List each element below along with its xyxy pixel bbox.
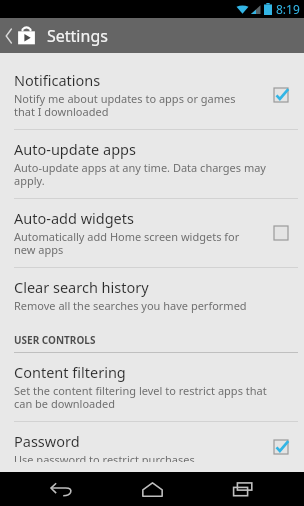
button[interactable]: Notifications [0,61,304,129]
button[interactable]: Home [122,472,182,506]
staticText: Remove all the searches you have perform… [14,298,247,313]
button[interactable]: Navigate up [0,18,41,53]
button[interactable]: Clear search history [0,268,304,323]
button[interactable]: Notifications [268,82,294,108]
staticText: Use password to restrict purchases [14,452,195,462]
button[interactable]: Auto-add widgets [268,220,294,246]
button[interactable]: Password [268,434,294,460]
staticText: Auto-add widgets [14,208,134,228]
staticText: Clear search history [14,277,149,297]
button[interactable]: Auto-update apps [0,130,304,198]
staticText: Password [14,431,80,451]
button[interactable]: Recent apps [213,472,273,506]
staticText: USER CONTROLS [14,333,96,347]
staticText: Auto-update apps [14,139,136,159]
staticText: Auto-update apps at any time. Data charg… [14,160,266,188]
staticText: Settings [47,25,108,47]
staticText: Automatically add Home screen widgets fo… [14,229,240,257]
staticText: Notifications [14,70,101,90]
staticText: 8:19 [276,1,300,17]
button[interactable]: Content filtering [0,353,304,421]
staticText: Notify me about updates to apps or games… [14,91,236,119]
staticText: Content filtering [14,362,126,382]
staticText: Set the content filtering level to restr… [14,383,267,411]
button[interactable]: Password [0,422,304,472]
button[interactable]: Auto-add widgets [0,199,304,267]
button[interactable]: Back [31,472,91,506]
